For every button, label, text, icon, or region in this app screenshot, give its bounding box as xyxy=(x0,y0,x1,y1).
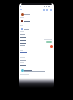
button[interactable]: Compose xyxy=(50,45,53,48)
button[interactable]: Menu xyxy=(20,9,22,11)
button[interactable] xyxy=(46,41,52,43)
button[interactable] xyxy=(20,28,52,31)
button[interactable] xyxy=(20,20,52,23)
button[interactable] xyxy=(20,13,52,16)
button[interactable] xyxy=(20,69,52,74)
